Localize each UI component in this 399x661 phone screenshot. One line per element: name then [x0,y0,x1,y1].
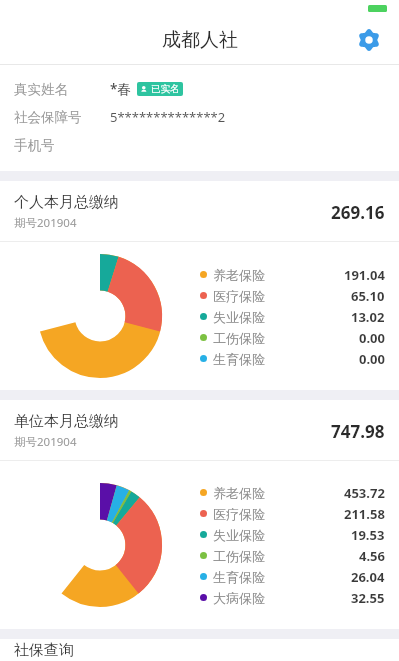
button[interactable]: 养老保险 [200,482,385,503]
button[interactable]: Settings [351,22,387,58]
staticText: 失业保险 [213,527,351,543]
staticText: 已实名 [151,83,180,95]
staticText: 0.00 [359,350,385,368]
staticText: 19.53 [351,526,385,544]
button[interactable]: 单位本月总缴纳 [0,400,399,629]
button[interactable]: 失业保险 [200,306,385,327]
staticText: 4.56 [359,547,385,565]
staticText: 32.55 [351,589,385,607]
button[interactable]: 养老保险 [200,264,385,285]
staticText: 社会保障号 [14,109,82,126]
staticText: 工伤保险 [213,330,359,346]
staticText: 手机号 [14,137,55,154]
staticText: 0.00 [359,329,385,347]
staticText: 5**************2 [110,108,226,126]
staticText: 生育保险 [213,351,359,367]
button[interactable]: 真实姓名 [0,79,399,99]
staticText: 大病保险 [213,590,351,606]
staticText: 工伤保险 [213,548,359,564]
staticText: 269.16 [331,201,385,224]
staticText: 真实姓名 [14,81,68,98]
staticText: 453.72 [344,484,385,502]
button[interactable]: 社会保障号 [0,107,399,127]
staticText: 医疗保险 [213,506,344,522]
staticText: 社保查询 [14,641,74,660]
staticText: 747.98 [331,420,385,443]
staticText: 191.04 [344,266,385,284]
button[interactable]: 医疗保险 [200,503,385,524]
staticText: *春 [110,80,131,98]
button[interactable]: 大病保险 [200,587,385,608]
staticText: 医疗保险 [213,288,351,304]
button[interactable]: 生育保险 [200,348,385,369]
staticText: 个人本月总缴纳 [14,193,119,212]
staticText: 211.58 [344,505,385,523]
button[interactable]: 医疗保险 [200,285,385,306]
staticText: 生育保险 [213,569,351,585]
staticText: 失业保险 [213,309,351,325]
button[interactable]: 手机号 [0,135,399,155]
staticText: 养老保险 [213,267,344,283]
button[interactable]: 工伤保险 [200,545,385,566]
button[interactable]: 生育保险 [200,566,385,587]
button[interactable]: 失业保险 [200,524,385,545]
staticText: 26.04 [351,568,385,586]
staticText: 65.10 [351,287,385,305]
staticText: 期号201904 [14,434,77,450]
staticText: 13.02 [351,308,385,326]
staticText: 成都人社 [162,28,238,52]
staticText: 期号201904 [14,215,77,231]
button[interactable]: 已实名 [140,83,180,95]
staticText: 养老保险 [213,485,344,501]
staticText: 单位本月总缴纳 [14,412,119,431]
button[interactable]: 个人本月总缴纳 [0,181,399,390]
button[interactable]: 工伤保险 [200,327,385,348]
